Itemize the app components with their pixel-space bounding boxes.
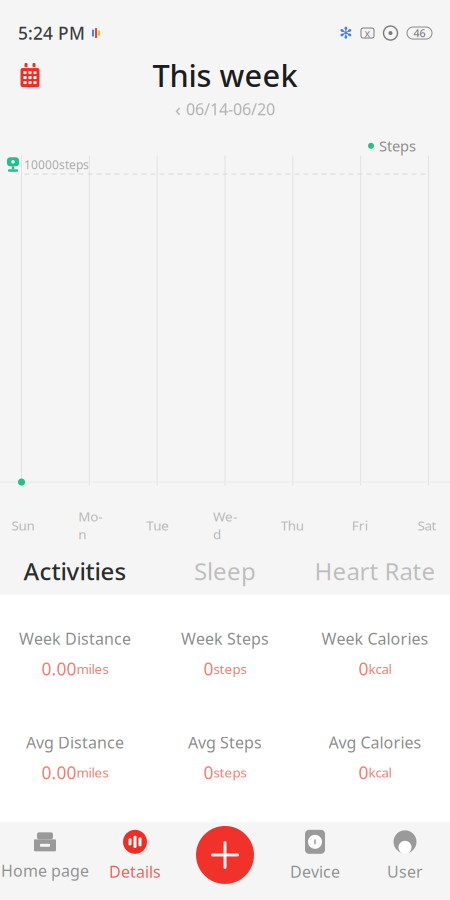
- staticText: Week Calories: [321, 628, 428, 649]
- staticText: Wed: [213, 507, 237, 543]
- staticText: Sat: [417, 516, 436, 534]
- staticText: 0: [203, 761, 213, 784]
- staticText: Fri: [352, 516, 368, 534]
- staticText: steps: [213, 660, 246, 677]
- staticText: Activities: [23, 555, 126, 587]
- staticText: ✻: [339, 24, 352, 42]
- staticText: miles: [76, 660, 108, 677]
- staticText: Week Steps: [181, 628, 269, 649]
- button[interactable]: Previous week: [175, 98, 275, 120]
- staticText: Week Distance: [19, 628, 131, 649]
- staticText: Avg Distance: [26, 732, 124, 753]
- staticText: 0: [358, 761, 368, 784]
- staticText: steps: [213, 764, 246, 781]
- button[interactable]: Home page: [0, 822, 90, 890]
- staticText: Avg Steps: [188, 732, 262, 753]
- staticText: Device: [290, 861, 340, 882]
- button[interactable]: Add: [196, 826, 254, 884]
- button[interactable]: Calendar: [8, 55, 52, 95]
- staticText: kcal: [368, 764, 391, 781]
- button[interactable]: Sleep: [150, 547, 300, 595]
- staticText: 5:24 PM: [18, 21, 85, 44]
- staticText: kcal: [368, 660, 391, 677]
- staticText: Thu: [281, 516, 304, 534]
- button[interactable]: Add: [180, 822, 270, 890]
- button[interactable]: Heart Rate: [300, 547, 450, 595]
- staticText: This week: [152, 55, 297, 95]
- staticText: 0: [203, 657, 213, 680]
- staticText: 0.00: [41, 761, 76, 784]
- staticText: miles: [76, 764, 108, 781]
- button[interactable]: Details: [90, 822, 180, 890]
- staticText: ‹: [175, 97, 181, 121]
- button[interactable]: User: [360, 822, 450, 890]
- staticText: Mon: [78, 507, 102, 543]
- button[interactable]: Activities: [0, 547, 150, 595]
- staticText: Details: [109, 861, 161, 882]
- button[interactable]: Device: [270, 822, 360, 890]
- staticText: Heart Rate: [314, 555, 435, 587]
- staticText: x: [364, 26, 370, 40]
- staticText: 0.00: [41, 657, 76, 680]
- staticText: Home page: [1, 860, 89, 881]
- staticText: Sun: [11, 516, 34, 534]
- staticText: 06/14-06/20: [186, 98, 275, 120]
- staticText: Avg Calories: [328, 732, 421, 753]
- staticText: Sleep: [194, 555, 256, 587]
- staticText: 10000steps: [24, 157, 89, 172]
- staticText: User: [387, 861, 423, 882]
- staticText: 46: [413, 26, 425, 40]
- staticText: Steps: [379, 136, 416, 156]
- staticText: 0: [358, 657, 368, 680]
- staticText: Tue: [146, 516, 169, 534]
